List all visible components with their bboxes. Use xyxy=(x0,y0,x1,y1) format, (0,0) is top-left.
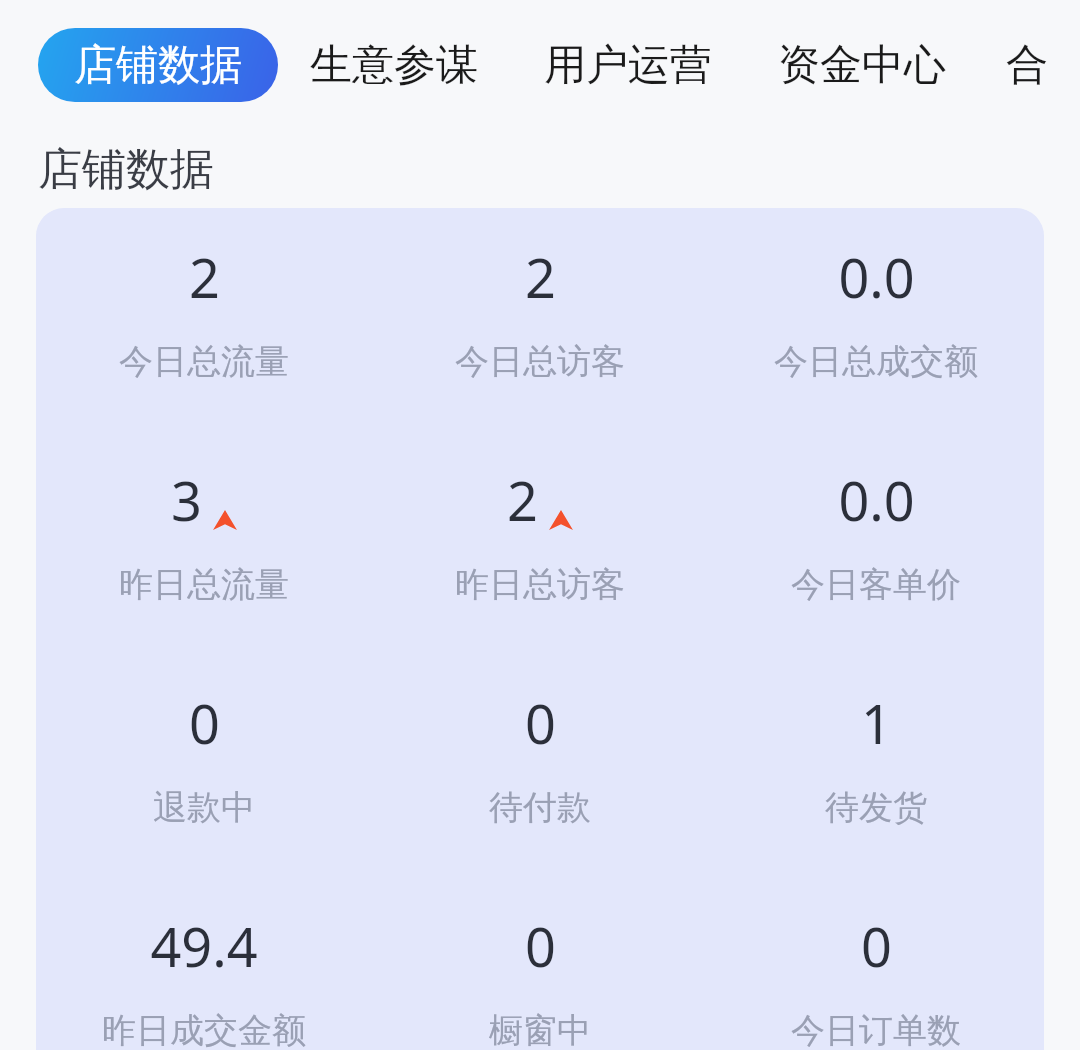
staticText: 昨日总流量 xyxy=(119,563,289,606)
staticText: 昨日成交金额 xyxy=(102,1009,306,1050)
button[interactable]: 0.0 xyxy=(708,240,1044,383)
staticText: 昨日总访客 xyxy=(455,563,625,606)
button[interactable]: 0 xyxy=(372,686,708,829)
button[interactable]: 2 xyxy=(372,240,708,383)
staticText: 3 xyxy=(171,463,202,537)
staticText: 0 xyxy=(189,686,220,760)
button[interactable]: 0 xyxy=(708,909,1044,1050)
staticText: 0.0 xyxy=(838,463,915,537)
button[interactable]: 生意参谋 xyxy=(310,28,478,102)
button[interactable]: 2 xyxy=(372,463,708,606)
staticText: 用户运营 xyxy=(544,39,712,92)
staticText: 今日总成交额 xyxy=(774,340,978,383)
staticText: 0 xyxy=(525,909,556,983)
staticText: 今日总访客 xyxy=(455,340,625,383)
button[interactable]: 0 xyxy=(36,686,372,829)
button[interactable]: 资金中心 xyxy=(778,28,946,102)
button[interactable]: 0 xyxy=(372,909,708,1050)
button[interactable]: 49.4 xyxy=(36,909,372,1050)
button[interactable]: 0.0 xyxy=(708,463,1044,606)
staticText: 今日总流量 xyxy=(119,340,289,383)
staticText: 待发货 xyxy=(825,786,927,829)
staticText: 店铺数据 xyxy=(74,39,242,92)
button[interactable]: 店铺数据 xyxy=(38,28,278,102)
staticText: 0 xyxy=(525,686,556,760)
staticText: 退款中 xyxy=(153,786,255,829)
button[interactable]: 合 xyxy=(1006,28,1048,102)
staticText: 2 xyxy=(189,240,220,314)
staticText: 1 xyxy=(861,686,892,760)
other: 上升 xyxy=(548,507,574,533)
staticText: 合 xyxy=(1006,39,1048,92)
staticText: 0 xyxy=(861,909,892,983)
other: 上升 xyxy=(212,507,238,533)
staticText: 待付款 xyxy=(489,786,591,829)
button[interactable]: 3 xyxy=(36,463,372,606)
button[interactable]: 2 xyxy=(36,240,372,383)
staticText: 生意参谋 xyxy=(310,39,478,92)
staticText: 橱窗中 xyxy=(489,1009,591,1050)
staticText: 今日订单数 xyxy=(791,1009,961,1050)
button[interactable]: 用户运营 xyxy=(544,28,712,102)
staticText: 2 xyxy=(507,463,538,537)
staticText: 店铺数据 xyxy=(38,142,214,197)
staticText: 今日客单价 xyxy=(791,563,961,606)
staticText: 49.4 xyxy=(150,909,258,983)
staticText: 资金中心 xyxy=(778,39,946,92)
staticText: 2 xyxy=(525,240,556,314)
button[interactable]: 1 xyxy=(708,686,1044,829)
staticText: 0.0 xyxy=(838,240,915,314)
